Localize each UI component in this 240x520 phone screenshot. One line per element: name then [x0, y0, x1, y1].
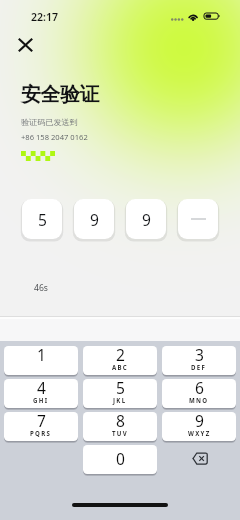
button[interactable]: 6	[162, 379, 236, 408]
staticText: 5	[116, 379, 125, 398]
staticText: ABC	[112, 363, 129, 371]
staticText: TUV	[112, 429, 128, 437]
staticText: 验证码已发送到	[21, 117, 78, 127]
staticText: DEF	[191, 363, 207, 371]
staticText: 0	[116, 448, 125, 469]
button[interactable]: Backspace	[162, 445, 236, 474]
button[interactable]: 4	[4, 379, 78, 408]
button[interactable]: 3	[162, 346, 236, 375]
staticText: JKL	[113, 396, 127, 404]
button[interactable]: 9	[74, 199, 114, 239]
staticText: 1	[37, 346, 46, 365]
staticText: 22:17	[31, 10, 59, 24]
button[interactable]: 5	[83, 379, 157, 408]
button[interactable]: 0	[83, 445, 157, 474]
staticText: PQRS	[30, 429, 52, 437]
button[interactable]: 5	[22, 199, 62, 239]
staticText: 2	[116, 346, 125, 365]
staticText: 46s	[34, 282, 48, 294]
staticText: +86 158 2047 0162	[21, 132, 88, 142]
button[interactable]: 2	[83, 346, 157, 375]
button[interactable]: 1	[4, 346, 78, 375]
staticText: 6	[195, 379, 204, 398]
staticText: 8	[116, 412, 125, 431]
button[interactable]: 8	[83, 412, 157, 441]
button[interactable]: 7	[4, 412, 78, 441]
staticText: 9	[195, 412, 204, 431]
staticText: WXYZ	[188, 429, 211, 437]
button[interactable]: Close	[11, 31, 39, 59]
button[interactable]: 9	[162, 412, 236, 441]
button[interactable]	[178, 199, 218, 239]
staticText: GHI	[33, 396, 49, 404]
staticText: 安全验证	[21, 82, 100, 107]
staticText: 7	[37, 412, 46, 431]
staticText: 5	[38, 209, 47, 230]
staticText: 4	[37, 379, 46, 398]
button[interactable]: 9	[126, 199, 166, 239]
staticText: 3	[195, 346, 204, 365]
staticText: 9	[90, 209, 99, 230]
staticText: MNO	[189, 396, 209, 404]
staticText: 9	[142, 209, 151, 230]
